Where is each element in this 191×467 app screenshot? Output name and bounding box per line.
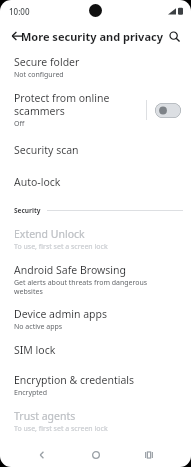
staticText: Encryption & credentials <box>14 373 135 387</box>
button[interactable]: Security scan <box>0 133 191 167</box>
staticText: Security scan <box>14 143 79 157</box>
staticText: Security <box>14 206 41 215</box>
staticText: SIM lock <box>14 343 56 357</box>
staticText: Secure folder <box>14 55 80 69</box>
button[interactable]: SIM lock <box>0 335 191 365</box>
button[interactable]: Protect from online scammers <box>0 83 191 133</box>
button[interactable]: Extend Unlock <box>0 219 191 255</box>
staticText: Extend Unlock <box>14 227 85 241</box>
staticText: More security and privacy <box>21 29 163 44</box>
button[interactable]: Secure folder <box>0 50 191 83</box>
button[interactable]: Encryption & credentials <box>0 365 191 401</box>
staticText: To use, first set a screen lock <box>14 242 108 252</box>
button[interactable]: Device admin apps <box>0 299 191 335</box>
button[interactable]: Search <box>161 23 187 49</box>
staticText: To use, first set a screen lock <box>14 424 108 434</box>
staticText: No active apps <box>14 322 63 332</box>
button[interactable]: Home <box>84 443 108 467</box>
button[interactable]: Back <box>30 443 54 467</box>
staticText: 10:00 <box>9 6 30 17</box>
button[interactable]: Recents <box>137 443 161 467</box>
staticText: Encrypted <box>14 388 48 398</box>
button[interactable]: Trust agents <box>0 401 191 437</box>
staticText: Protect from online scammers <box>14 91 140 118</box>
staticText: Trust agents <box>14 409 76 423</box>
staticText: Android Safe Browsing <box>14 263 126 277</box>
staticText: Not configured <box>14 70 64 80</box>
button[interactable]: Back <box>4 23 30 49</box>
staticText: Get alerts about threats from dangerous … <box>14 278 177 296</box>
staticText: Auto-lock <box>14 175 61 189</box>
staticText: Off <box>14 119 25 129</box>
button[interactable]: Protect from online scammers toggle <box>155 103 181 118</box>
button[interactable]: Android Safe Browsing <box>0 255 191 299</box>
button[interactable]: Auto-lock <box>0 167 191 197</box>
staticText: Device admin apps <box>14 307 108 321</box>
